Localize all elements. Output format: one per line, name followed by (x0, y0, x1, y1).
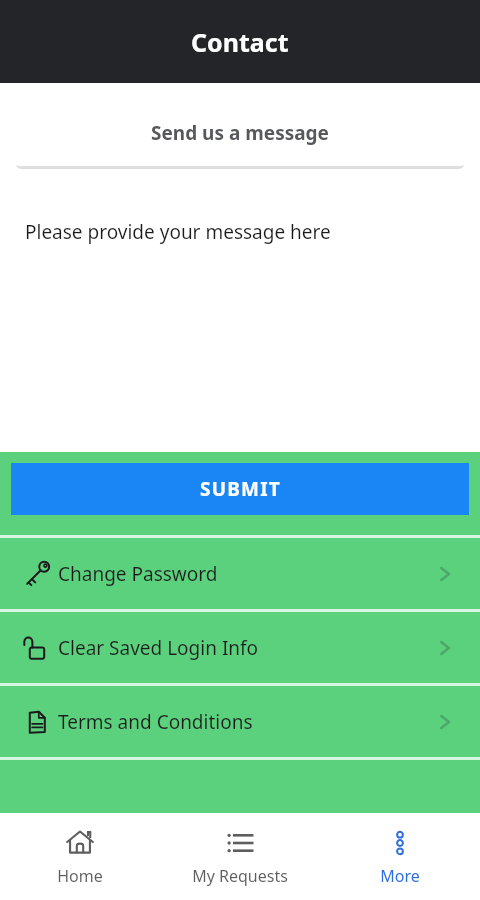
staticText: Contact (191, 25, 289, 59)
staticText: Clear Saved Login Info (58, 635, 259, 661)
button[interactable]: My Requests (160, 813, 320, 900)
other: More (384, 827, 416, 859)
button[interactable]: Change Password (0, 538, 480, 609)
staticText: Terms and Conditions (58, 709, 253, 735)
staticText: Home (57, 865, 103, 887)
staticText: SUBMIT (200, 476, 281, 502)
other: My Requests (224, 827, 256, 859)
button[interactable]: Clear Saved Login Info (0, 612, 480, 683)
staticText: Send us a message (151, 120, 329, 146)
button[interactable]: More (320, 813, 480, 900)
other: Home (64, 827, 96, 859)
staticText: My Requests (192, 865, 288, 887)
staticText: More (380, 865, 420, 887)
staticText: Change Password (58, 561, 218, 587)
button[interactable]: Home (0, 813, 160, 900)
button[interactable]: SUBMIT (11, 463, 469, 515)
button[interactable]: Terms and Conditions (0, 686, 480, 757)
staticText: Please provide your message here (25, 219, 331, 245)
button[interactable]: Send us a message (14, 99, 466, 166)
